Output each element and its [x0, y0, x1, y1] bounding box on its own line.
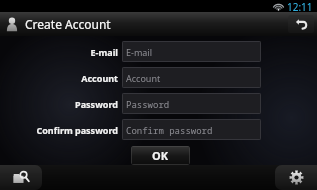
button[interactable]: OK	[131, 146, 190, 165]
staticText: OK	[152, 148, 169, 163]
button[interactable]: Settings	[275, 165, 317, 190]
staticText: Confirm password	[126, 124, 213, 136]
button[interactable]: E-mail	[122, 41, 261, 62]
staticText: Create Account	[25, 16, 111, 32]
staticText: Account	[81, 72, 118, 84]
button[interactable]: Confirm password	[122, 119, 261, 140]
staticText: E-mail	[90, 46, 118, 58]
button[interactable]: Password	[122, 93, 261, 114]
button[interactable]: Back	[288, 15, 314, 33]
staticText: Password	[75, 98, 118, 110]
button[interactable]: Browse files	[0, 165, 42, 190]
staticText: E-mail	[126, 46, 153, 58]
staticText: Password	[126, 98, 170, 110]
staticText: Account	[126, 72, 161, 84]
staticText: Confirm password	[36, 124, 118, 136]
button[interactable]: Account	[122, 67, 261, 88]
staticText: 12:11	[287, 0, 313, 12]
